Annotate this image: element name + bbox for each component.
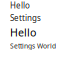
staticText: Settings World [10, 41, 56, 50]
staticText: Hello [10, 25, 36, 39]
staticText: Settings [10, 13, 41, 23]
staticText: Hello [10, 0, 30, 11]
